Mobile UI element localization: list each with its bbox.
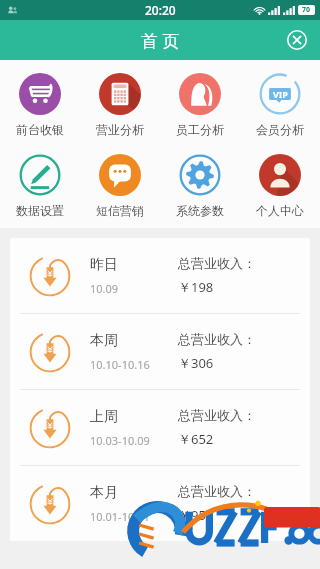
button[interactable]: 个人中心 bbox=[240, 151, 320, 220]
staticText: 本周 bbox=[90, 332, 118, 350]
staticText: 会员分析 bbox=[256, 122, 304, 137]
staticText: ￥652 bbox=[178, 430, 214, 448]
staticText: 总营业收入： bbox=[178, 483, 256, 499]
staticText: 数据设置 bbox=[16, 203, 64, 218]
staticText: 20:20 bbox=[145, 2, 176, 18]
staticText: 10.09 bbox=[90, 281, 119, 296]
staticText: 总营业收入： bbox=[178, 331, 256, 347]
button[interactable]: 系统参数 bbox=[160, 151, 240, 220]
button[interactable]: 本周 bbox=[10, 314, 310, 389]
button[interactable]: 营业分析 bbox=[80, 70, 160, 139]
staticText: 总营业收入： bbox=[178, 407, 256, 423]
staticText: 员工分析 bbox=[176, 122, 224, 137]
button[interactable]: 上周 bbox=[10, 390, 310, 465]
staticText: 短信营销 bbox=[96, 203, 144, 218]
staticText: 10.01-10.31 bbox=[90, 509, 150, 524]
staticText: VIP bbox=[273, 88, 288, 100]
button[interactable]: 本月 bbox=[10, 466, 310, 541]
staticText: 总营业收入： bbox=[178, 255, 256, 271]
staticText: 昨日 bbox=[90, 256, 118, 274]
button[interactable]: Close bbox=[286, 29, 308, 51]
staticText: 系统参数 bbox=[176, 203, 224, 218]
staticText: 10.03-10.09 bbox=[90, 433, 150, 448]
button[interactable]: 前台收银 bbox=[0, 70, 80, 139]
staticText: 营业分析 bbox=[96, 122, 144, 137]
button[interactable]: VIP bbox=[240, 70, 320, 139]
staticText: 本月 bbox=[90, 484, 118, 502]
staticText: 个人中心 bbox=[256, 203, 304, 218]
staticText: 首 页 bbox=[141, 29, 180, 52]
staticText: ￥198 bbox=[178, 278, 214, 296]
button[interactable]: 短信营销 bbox=[80, 151, 160, 220]
staticText: ￥306 bbox=[178, 354, 214, 372]
button[interactable]: 昨日 bbox=[10, 238, 310, 313]
button[interactable]: 员工分析 bbox=[160, 70, 240, 139]
staticText: ￥958 bbox=[178, 506, 214, 524]
button[interactable]: 数据设置 bbox=[0, 151, 80, 220]
staticText: 上周 bbox=[90, 408, 118, 426]
staticText: 70 bbox=[302, 5, 311, 15]
staticText: 10.10-10.16 bbox=[90, 357, 150, 372]
staticText: 前台收银 bbox=[16, 122, 64, 137]
